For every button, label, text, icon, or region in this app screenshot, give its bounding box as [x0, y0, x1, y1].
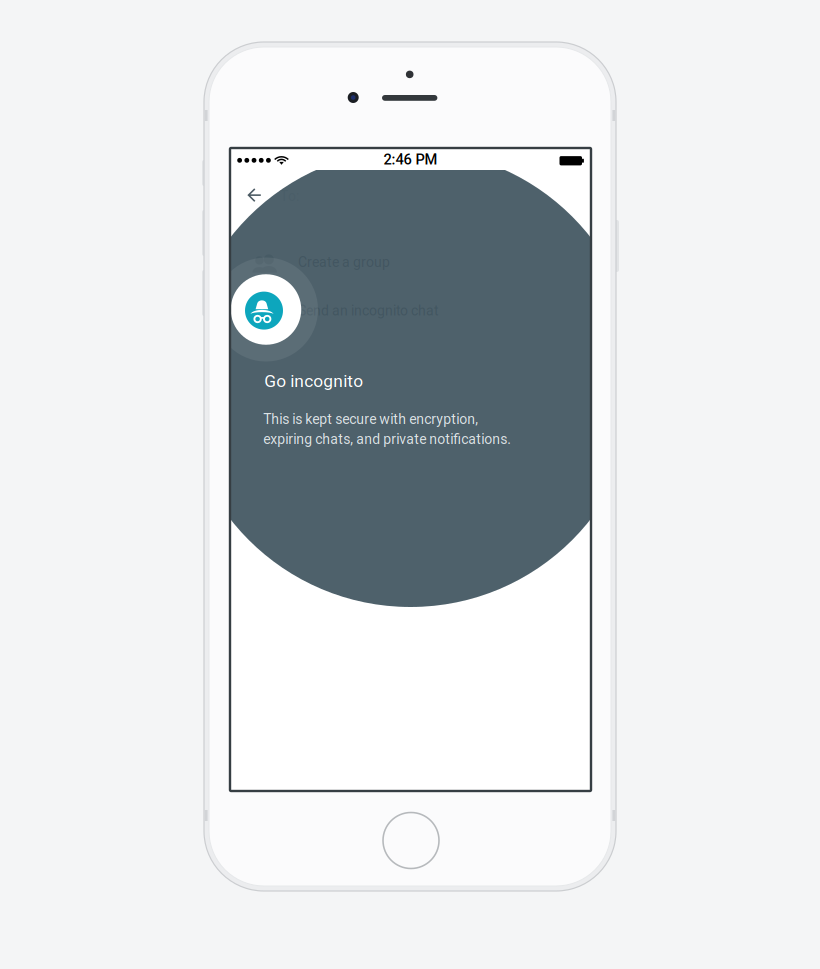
- button[interactable]: Back: [235, 175, 275, 215]
- staticText: Send an incognito chat: [298, 302, 439, 319]
- staticText: expiring chats, and private notification…: [263, 431, 511, 447]
- staticText: To:: [280, 188, 299, 204]
- staticText: Create a group: [298, 254, 390, 270]
- staticText: This is kept secure with encryption,: [263, 411, 478, 427]
- button[interactable]: Send an incognito chat: [230, 287, 591, 334]
- staticText: 2:46 PM: [383, 151, 437, 168]
- button[interactable]: Create a group: [230, 240, 591, 287]
- staticText: Go incognito: [264, 371, 363, 391]
